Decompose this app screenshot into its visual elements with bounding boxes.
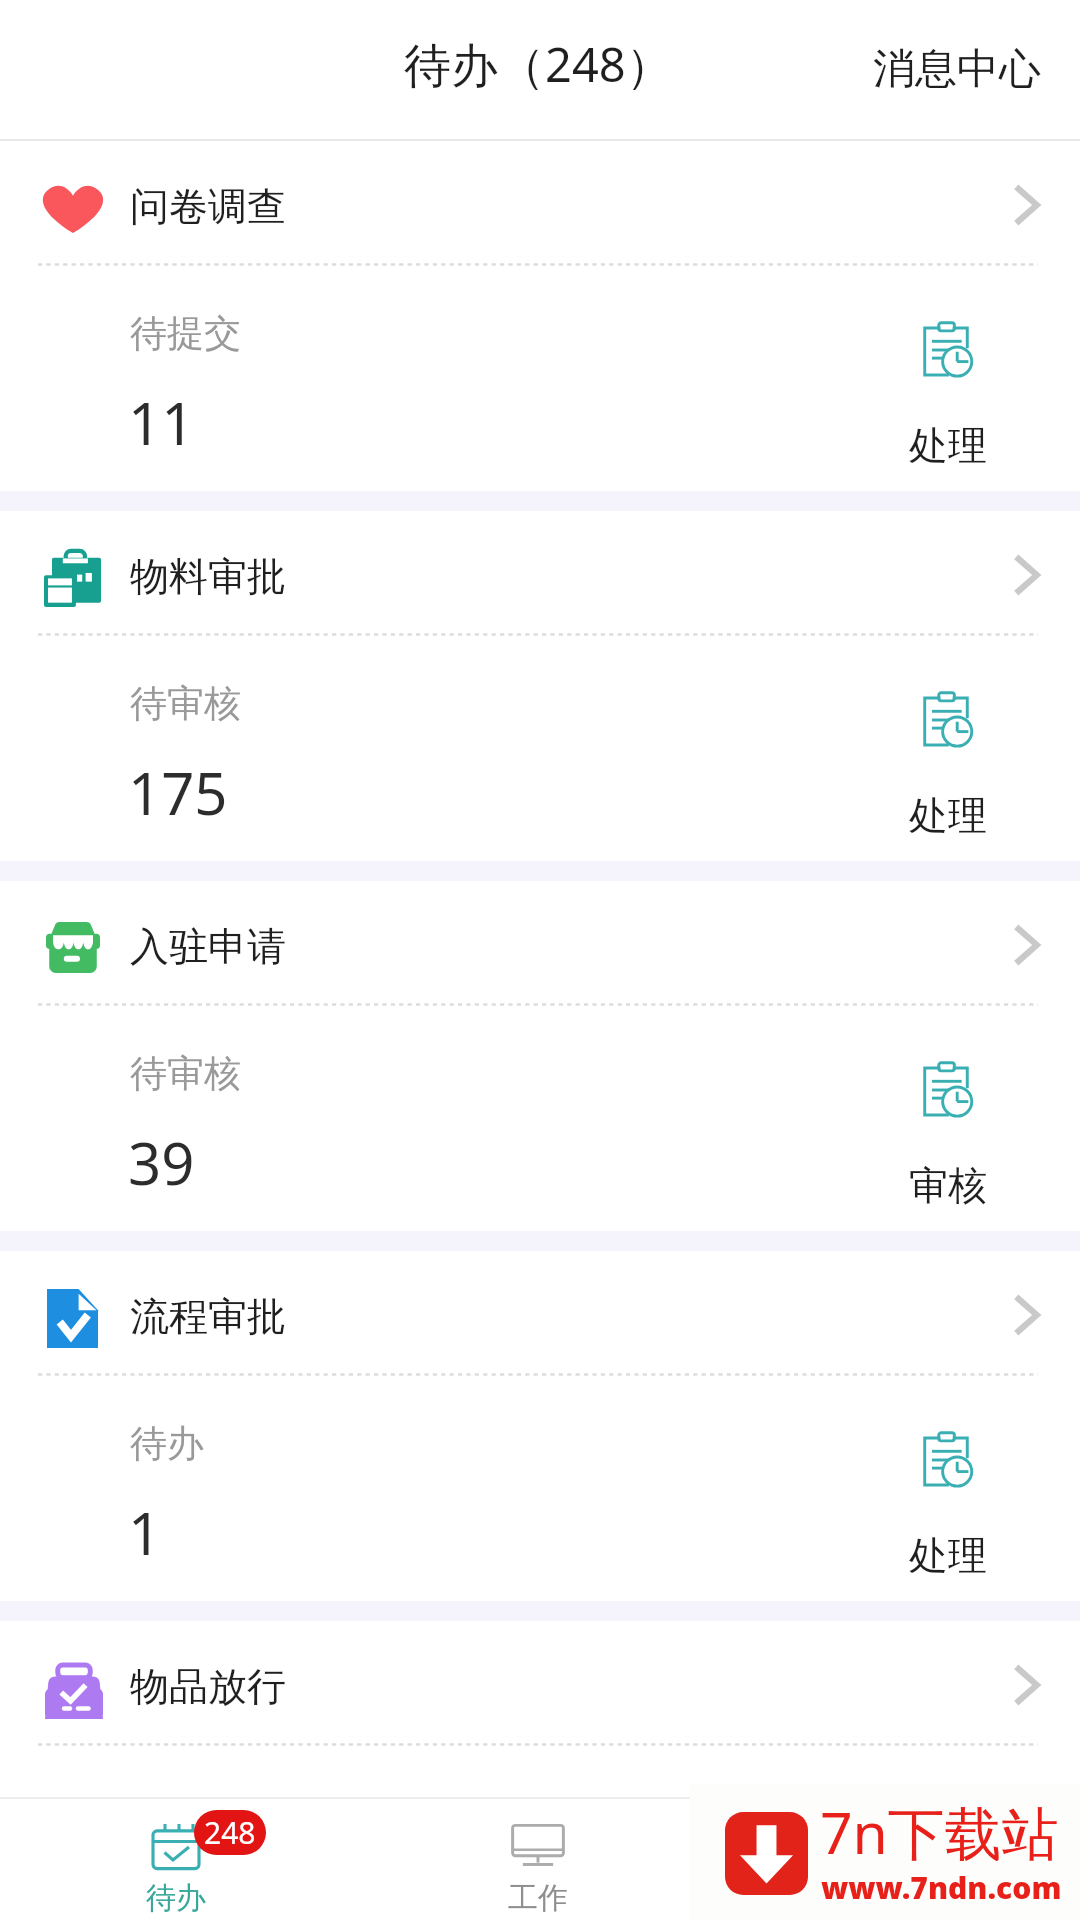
staticText: 物料审批 — [130, 552, 286, 601]
staticText: 处理 — [909, 791, 987, 840]
staticText: 处理 — [909, 421, 987, 470]
staticText: 7n下载站 — [820, 1793, 1059, 1871]
button[interactable]: 打开 流程审批 — [989, 1271, 1064, 1361]
staticText: 175 — [128, 753, 228, 832]
button[interactable]: 流程审批 — [0, 1251, 1080, 1373]
staticText: 待审核 — [130, 680, 241, 727]
staticText: 待办 — [130, 1420, 204, 1467]
button[interactable]: 问卷调查 — [0, 141, 1080, 263]
staticText: 待审核 — [130, 1050, 241, 1097]
button[interactable]: 打开 入驻申请 — [989, 901, 1064, 991]
button[interactable]: 打开 物品放行 — [989, 1641, 1064, 1731]
staticText: 消息中心 — [873, 43, 1041, 96]
staticText: 39 — [128, 1123, 195, 1202]
staticText: 11 — [128, 383, 195, 462]
button[interactable]: 处理 — [893, 311, 1003, 480]
staticText: 待办 — [146, 1879, 206, 1917]
button[interactable]: 入驻申请 — [0, 881, 1080, 1003]
button[interactable]: 物料审批 — [0, 511, 1080, 633]
other: 下载 — [725, 1812, 808, 1895]
staticText: 待提交 — [130, 310, 241, 357]
staticText: 待办（248） — [404, 32, 673, 96]
staticText: 工作 — [508, 1879, 568, 1917]
button[interactable]: 工作 — [484, 1810, 592, 1920]
staticText: 审核 — [909, 1161, 987, 1210]
staticText: 处理 — [909, 1531, 987, 1580]
button[interactable]: 打开 问卷调查 — [989, 161, 1064, 251]
button[interactable]: 审核 — [893, 1051, 1003, 1220]
staticText: 问卷调查 — [130, 182, 286, 231]
staticText: 248 — [204, 1812, 256, 1853]
staticText: 流程审批 — [130, 1292, 286, 1341]
staticText: 入驻申请 — [130, 922, 286, 971]
button[interactable]: 物品放行 — [0, 1621, 1080, 1743]
staticText: 1 — [128, 1493, 162, 1572]
button[interactable]: 打开 物料审批 — [989, 531, 1064, 621]
staticText: www.7ndn.com — [821, 1867, 1062, 1908]
button[interactable]: 消息中心 — [843, 13, 1071, 126]
button[interactable]: 处理 — [893, 681, 1003, 850]
button[interactable]: 待办 — [122, 1810, 230, 1920]
button[interactable]: 处理 — [893, 1421, 1003, 1590]
staticText: 物品放行 — [130, 1662, 286, 1711]
